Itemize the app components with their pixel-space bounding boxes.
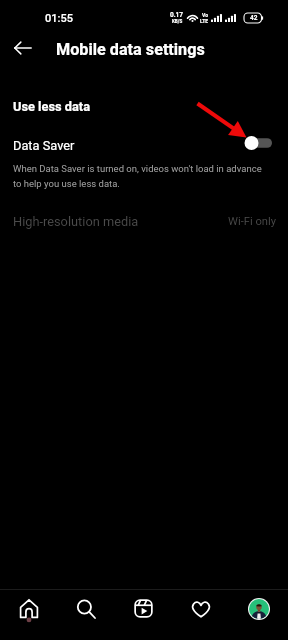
button[interactable]: High-resolution media — [0, 208, 288, 234]
button[interactable]: Activity — [172, 590, 230, 627]
button[interactable]: Profile — [230, 590, 288, 627]
staticText: 01:55 — [45, 12, 73, 25]
button[interactable]: Data Saver toggle — [242, 134, 272, 152]
staticText: Use less data — [13, 99, 91, 114]
button[interactable]: Reels — [114, 590, 172, 627]
staticText: Wi-Fi only — [228, 215, 276, 228]
staticText: Data Saver — [13, 138, 75, 153]
staticText: 0.17 — [170, 11, 184, 19]
button[interactable]: Data Saver — [0, 133, 288, 157]
staticText: LTE — [200, 18, 209, 24]
staticText: Mobile data settings — [56, 40, 205, 59]
staticText: High-resolution media — [13, 214, 139, 229]
staticText: 42 — [250, 14, 258, 22]
staticText: When Data Saver is turned on, videos won… — [13, 163, 269, 190]
button[interactable]: Home — [0, 590, 57, 627]
button[interactable]: Search — [57, 590, 114, 627]
staticText: Vo — [202, 12, 208, 18]
button[interactable]: Back — [6, 31, 40, 65]
staticText: KB/S — [172, 19, 183, 24]
